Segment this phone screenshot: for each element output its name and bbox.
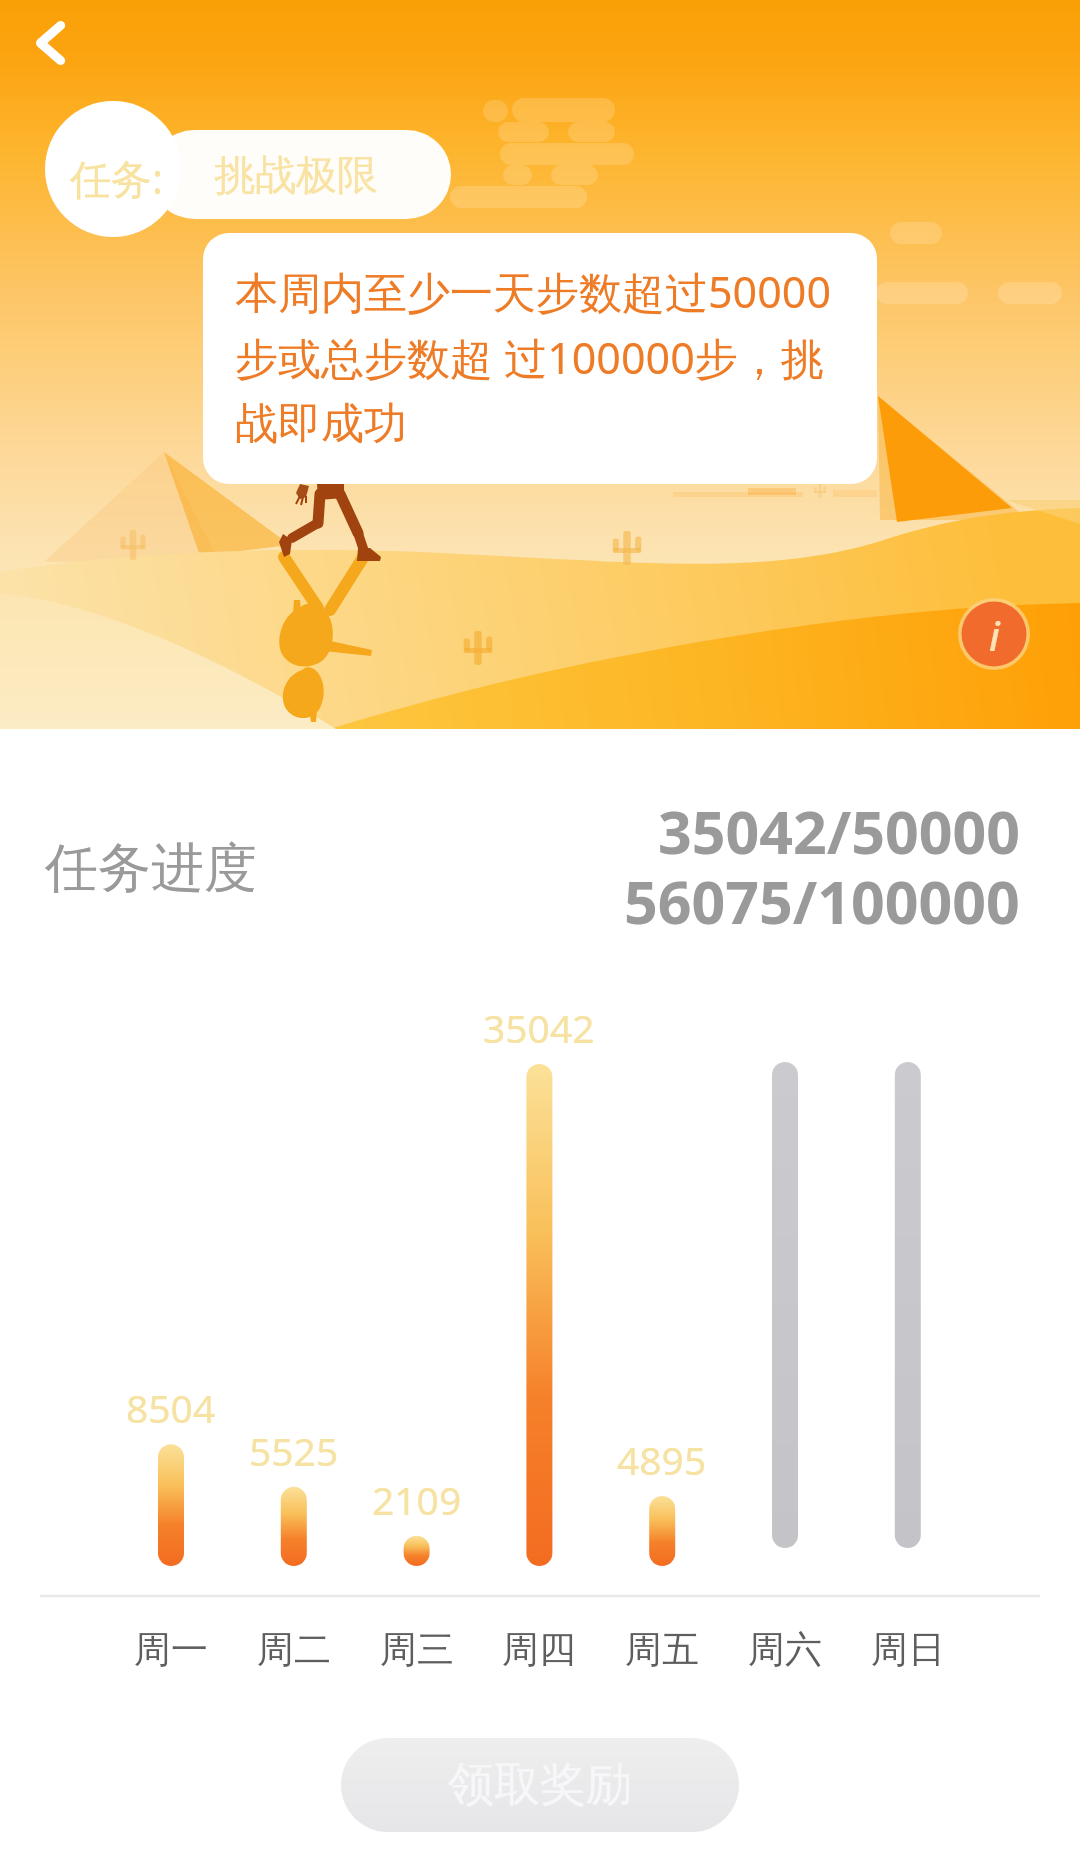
staticText: 35042/50000: [658, 791, 1020, 871]
staticText: 任务进度: [45, 835, 257, 902]
staticText: 5525: [249, 1424, 339, 1477]
button[interactable]: 领取奖励: [341, 1738, 739, 1832]
staticText: 本周内至少一天步数超过50000步或总步数超 过100000步，挑战即成功: [235, 262, 851, 451]
staticText: 周六: [748, 1626, 822, 1673]
staticText: 周五: [625, 1626, 699, 1673]
staticText: 35042: [483, 1001, 595, 1054]
staticText: 8504: [126, 1381, 216, 1434]
staticText: 挑战极限: [214, 150, 378, 202]
staticText: 周三: [380, 1626, 454, 1673]
staticText: 领取奖励: [448, 1756, 632, 1814]
staticText: i: [989, 608, 1000, 662]
staticText: 周日: [871, 1626, 945, 1673]
staticText: 周一: [134, 1626, 208, 1673]
button[interactable]: Info: [958, 598, 1030, 670]
staticText: 任务:: [70, 150, 163, 206]
staticText: 4895: [617, 1433, 707, 1486]
button[interactable]: Back: [8, 0, 94, 86]
staticText: 56075/100000: [624, 861, 1020, 941]
staticText: 周二: [257, 1626, 331, 1673]
staticText: 2109: [372, 1473, 462, 1526]
staticText: 周四: [502, 1626, 576, 1673]
